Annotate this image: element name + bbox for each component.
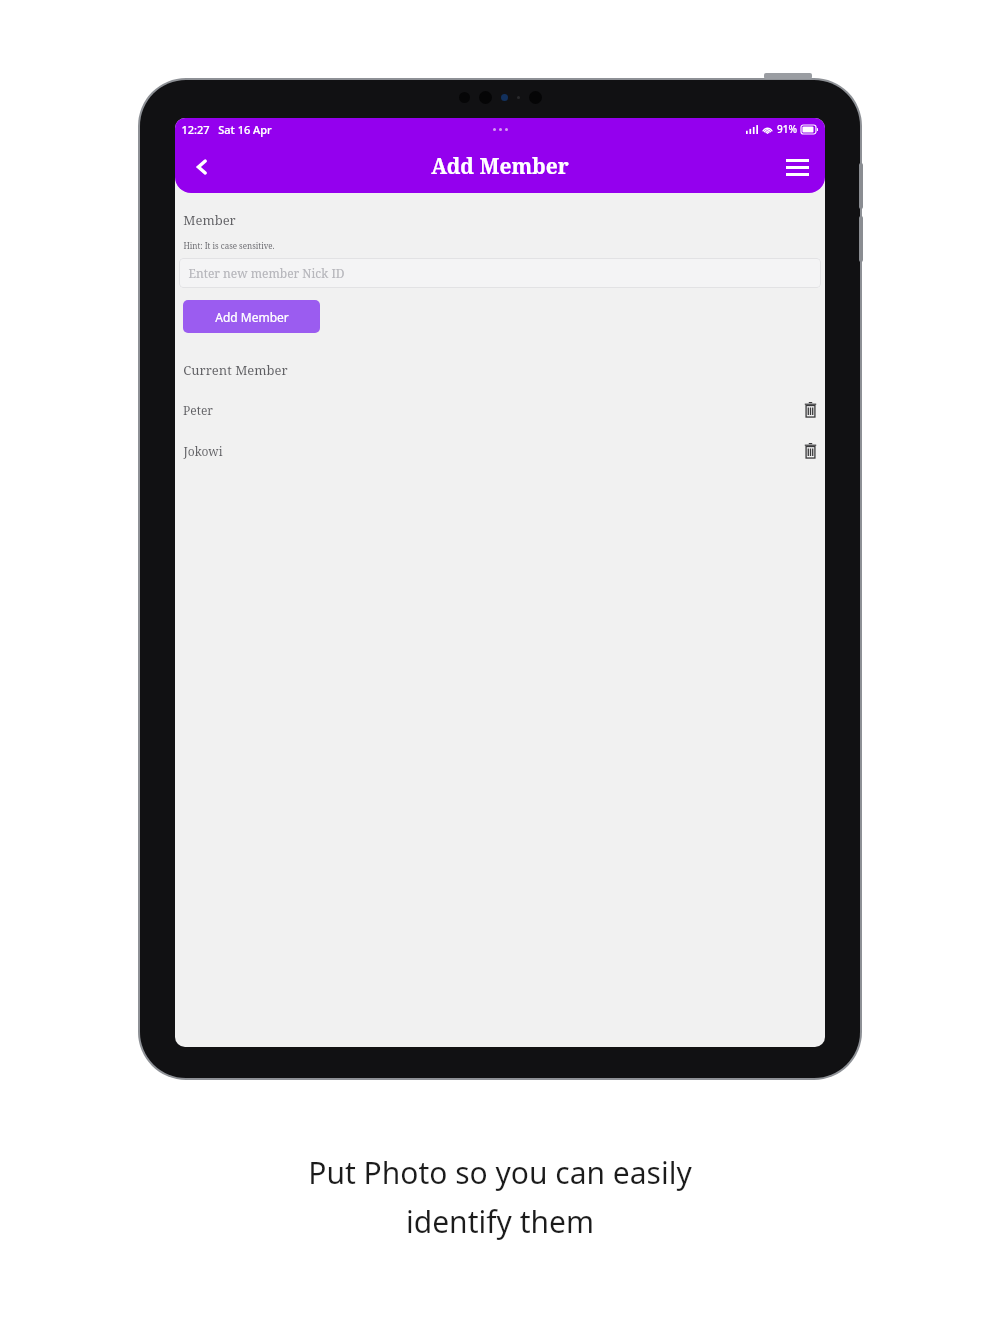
staticText: Hint: It is case sensitive. xyxy=(183,240,275,251)
staticText: identify them xyxy=(406,1201,594,1242)
button[interactable]: Jokowi xyxy=(179,440,821,462)
button[interactable]: Peter xyxy=(179,399,821,421)
staticText: 91% xyxy=(777,122,797,136)
button[interactable]: Add Member xyxy=(183,300,320,333)
staticText: Enter new member Nick ID xyxy=(188,265,345,281)
staticText: 12:27 xyxy=(181,122,210,137)
button[interactable]: Menu xyxy=(779,149,815,185)
button[interactable]: Back xyxy=(185,150,219,184)
staticText: Add Member xyxy=(431,152,569,181)
staticText: Peter xyxy=(183,402,213,418)
button[interactable]: Delete Jokowi xyxy=(799,440,821,462)
staticText: Member xyxy=(183,211,236,229)
staticText: Put Photo so you can easily xyxy=(308,1152,692,1193)
staticText: Add Member xyxy=(215,309,289,325)
staticText: Current Member xyxy=(183,361,288,379)
button[interactable]: Delete Peter xyxy=(799,399,821,421)
button[interactable]: Enter new member Nick ID xyxy=(179,258,821,288)
staticText: Jokowi xyxy=(183,443,223,459)
staticText: Sat 16 Apr xyxy=(218,122,272,137)
